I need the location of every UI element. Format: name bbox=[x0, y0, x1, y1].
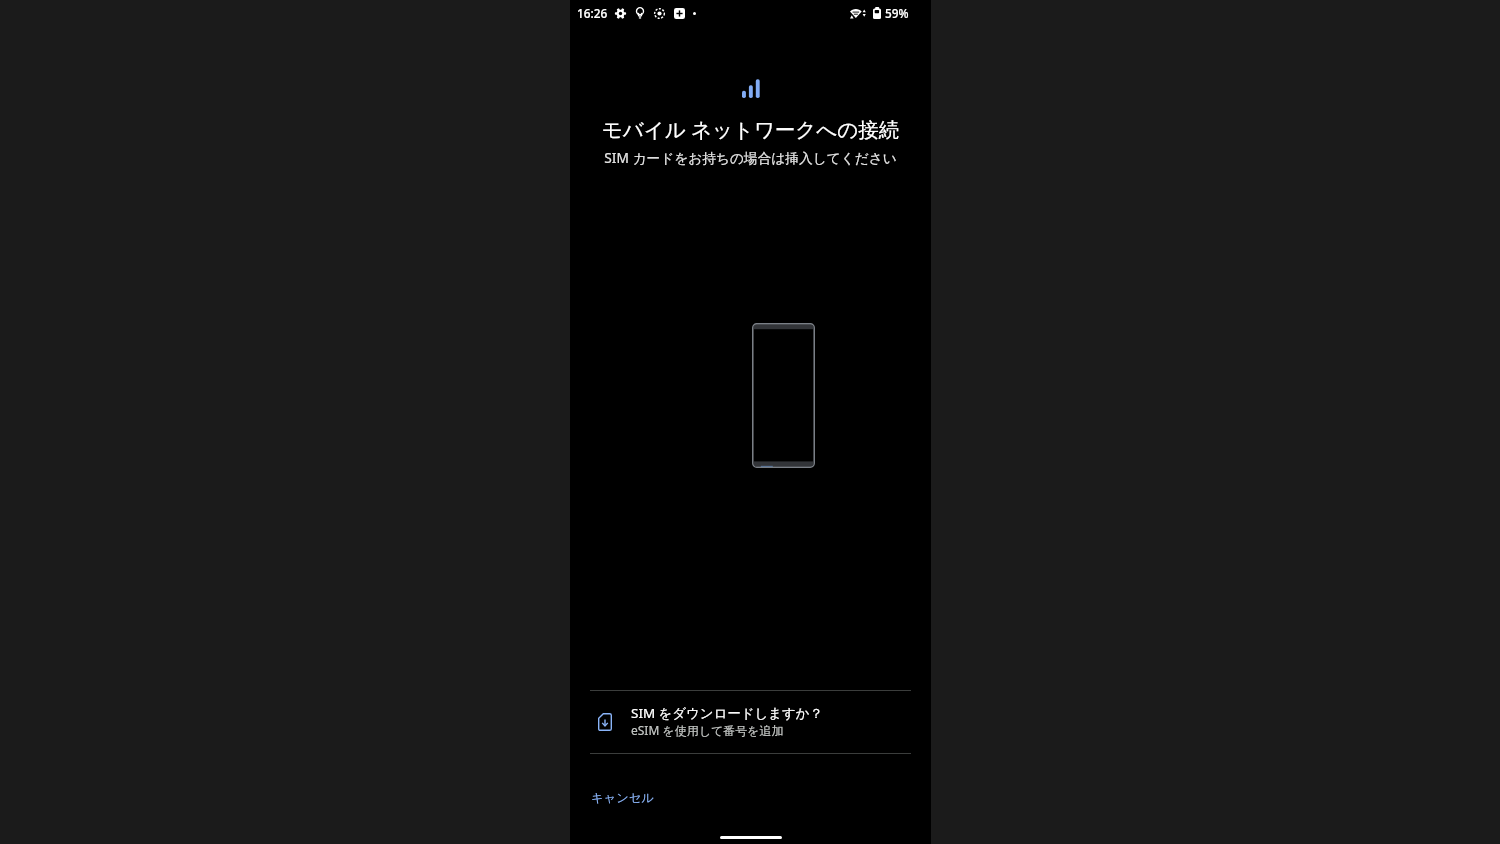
staticText: 59% bbox=[885, 5, 909, 21]
staticText: 16:26 bbox=[577, 5, 608, 21]
staticText: キャンセル bbox=[591, 790, 654, 805]
other: Download SIM bbox=[598, 713, 612, 731]
button[interactable]: キャンセル bbox=[582, 785, 663, 810]
staticText: モバイル ネットワークへの接続 bbox=[570, 115, 931, 143]
button[interactable]: Download SIM bbox=[570, 691, 931, 753]
staticText: SIM カードをお持ちの場合は挿入してください bbox=[570, 148, 931, 167]
staticText: SIM をダウンロードしますか？ bbox=[631, 704, 824, 722]
staticText: eSIM を使用して番号を追加 bbox=[631, 722, 784, 738]
